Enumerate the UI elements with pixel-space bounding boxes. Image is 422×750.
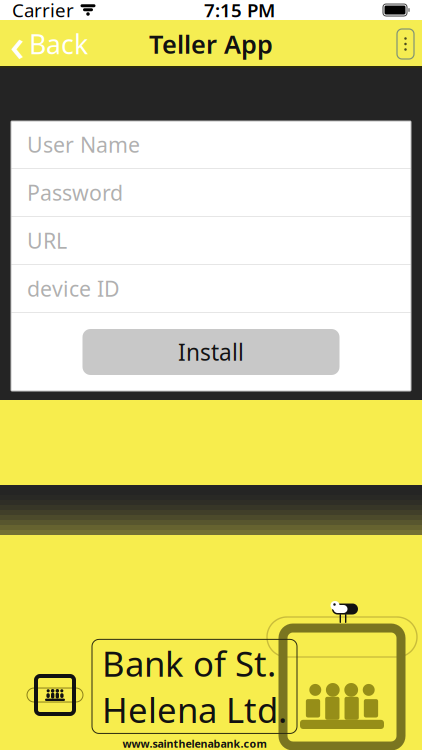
staticText: 7:15 PM [204, 0, 275, 22]
staticText: ‹ [10, 14, 25, 74]
staticText: Carrier [12, 0, 74, 22]
button[interactable]: URL [11, 217, 411, 264]
staticText: Install [178, 337, 244, 367]
staticText: device ID [27, 274, 120, 303]
button[interactable]: device ID [11, 265, 411, 312]
staticText: Bank of St. Helena Ltd. [102, 640, 287, 732]
staticText: Teller App [149, 27, 273, 61]
button[interactable]: Password [11, 169, 411, 216]
staticText: Password [27, 178, 123, 207]
button[interactable]: ‹ [0, 21, 98, 67]
button[interactable]: Install [82, 329, 339, 375]
staticText: Back [29, 26, 88, 62]
button[interactable]: More options [397, 29, 422, 59]
button[interactable]: User Name [11, 121, 411, 168]
staticText: URL [27, 226, 67, 255]
staticText: www.sainthelenabank.com [122, 736, 266, 750]
staticText: User Name [27, 130, 140, 159]
